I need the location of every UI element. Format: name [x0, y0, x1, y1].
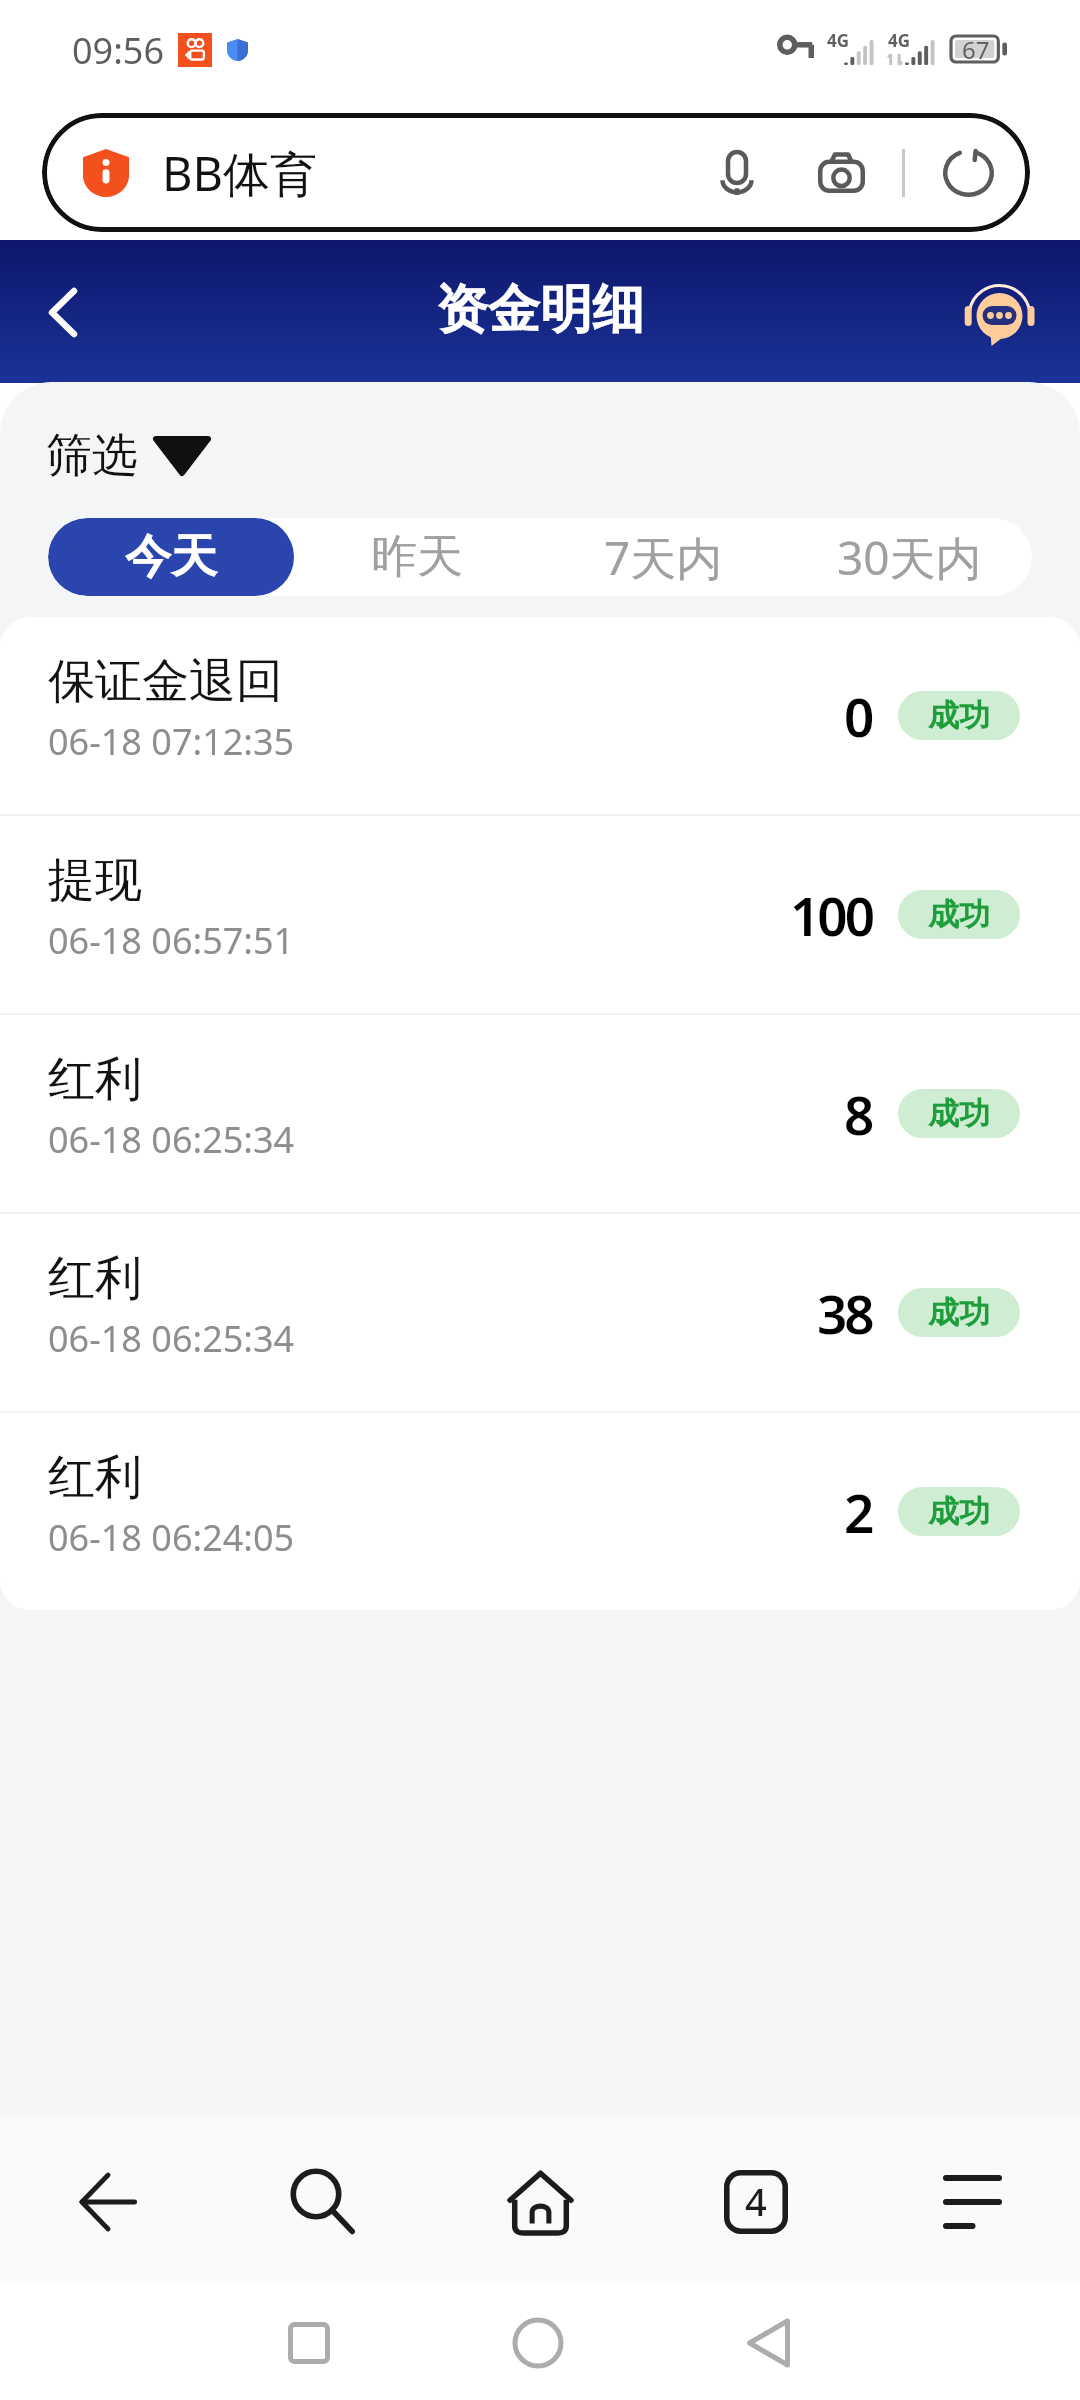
button[interactable]: Back	[709, 2281, 829, 2400]
button[interactable]: 红利	[0, 1413, 1080, 1610]
button[interactable]: 红利	[0, 1015, 1080, 1212]
staticText: 4G	[827, 29, 850, 52]
staticText: 成功	[928, 1094, 990, 1133]
staticText: 06-18 06:24:05	[48, 1513, 295, 1562]
button[interactable]: Customer service	[952, 272, 1048, 368]
button[interactable]: Back	[17, 266, 109, 358]
staticText: 成功	[928, 696, 990, 735]
button[interactable]: Tabs	[648, 2115, 864, 2281]
button[interactable]: Refresh	[936, 141, 1000, 205]
staticText: 8	[844, 1078, 872, 1150]
staticText: 红利	[48, 1050, 142, 1109]
button[interactable]: Voice search	[705, 141, 769, 205]
button[interactable]: Home	[478, 2281, 598, 2400]
staticText: 38	[817, 1277, 872, 1349]
staticText: 30天内	[837, 526, 982, 589]
staticText: 09:56	[72, 26, 165, 75]
staticText: 成功	[928, 1293, 990, 1332]
button[interactable]: Recents	[249, 2281, 369, 2400]
button[interactable]: 7天内	[540, 518, 786, 596]
button[interactable]: 筛选	[40, 420, 214, 492]
staticText: 0	[844, 680, 872, 752]
staticText: 100	[790, 879, 872, 951]
button[interactable]: Menu	[864, 2115, 1080, 2281]
staticText: 红利	[48, 1448, 142, 1507]
staticText: 06-18 06:57:51	[48, 916, 295, 965]
button[interactable]: BB体育	[42, 113, 1030, 232]
staticText: 昨天	[371, 528, 463, 586]
staticText: 4G	[888, 29, 911, 52]
staticText: 06-18 06:25:34	[48, 1115, 295, 1164]
button[interactable]: 今天	[48, 518, 294, 596]
staticText: 成功	[928, 1492, 990, 1531]
button[interactable]: 昨天	[294, 518, 540, 596]
button[interactable]: Search	[216, 2115, 432, 2281]
button[interactable]: Home	[432, 2115, 648, 2281]
button[interactable]: 红利	[0, 1214, 1080, 1411]
staticText: 7天内	[604, 526, 723, 589]
staticText: 红利	[48, 1249, 142, 1308]
staticText: 4	[745, 2175, 767, 2227]
button[interactable]: 30天内	[786, 518, 1032, 596]
staticText: 资金明细	[436, 277, 644, 343]
staticText: 保证金退回	[48, 652, 283, 711]
staticText: 今天	[125, 528, 217, 586]
button[interactable]: Camera search	[809, 141, 873, 205]
staticText: 67	[962, 33, 990, 63]
button[interactable]: Back	[0, 2115, 216, 2281]
staticText: 2	[844, 1476, 872, 1548]
staticText: 成功	[928, 895, 990, 934]
staticText: 06-18 06:25:34	[48, 1314, 295, 1363]
button[interactable]: 提现	[0, 816, 1080, 1013]
staticText: BB体育	[162, 141, 318, 205]
staticText: 筛选	[46, 427, 138, 485]
staticText: 06-18 07:12:35	[48, 717, 295, 766]
staticText: 提现	[48, 851, 142, 910]
button[interactable]: 保证金退回	[0, 617, 1080, 814]
